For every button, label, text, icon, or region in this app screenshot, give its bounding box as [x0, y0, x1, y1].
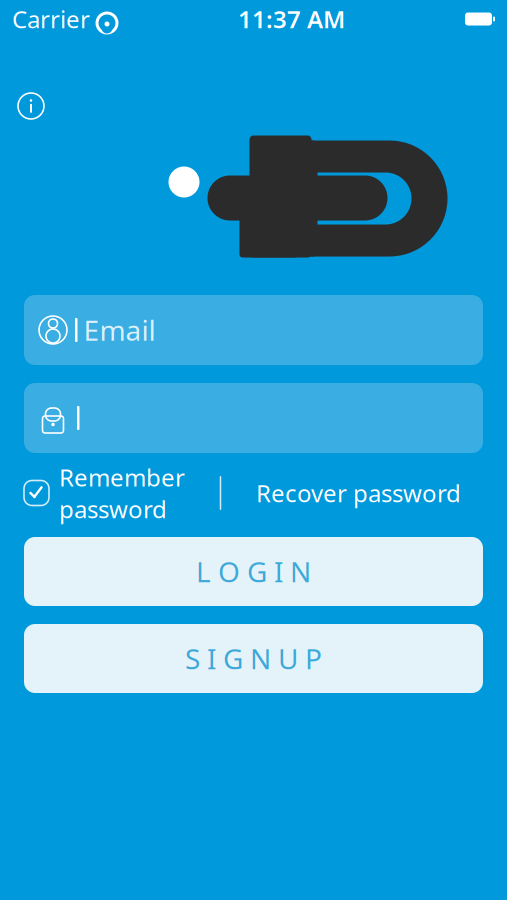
staticText: Email	[83, 311, 155, 349]
staticText: L O G I N	[196, 553, 311, 590]
staticText: Recover password	[256, 477, 461, 509]
button[interactable]: Remember password	[24, 473, 185, 513]
staticText: 11:37 AM	[238, 3, 345, 35]
staticText: Carrier	[12, 3, 90, 35]
staticText: Remember password	[59, 461, 185, 525]
button[interactable]: Information	[9, 84, 53, 128]
button[interactable]: Recover password	[256, 473, 461, 513]
button[interactable]: L O G I N	[24, 537, 483, 606]
button[interactable]: S I G N U P	[24, 624, 483, 693]
staticText: S I G N U P	[185, 640, 322, 677]
